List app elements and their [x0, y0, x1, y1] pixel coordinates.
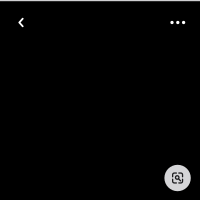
button[interactable]: More options — [159, 3, 197, 41]
button[interactable]: Back — [2, 3, 40, 41]
button[interactable]: Visual Look Up — [164, 165, 191, 191]
